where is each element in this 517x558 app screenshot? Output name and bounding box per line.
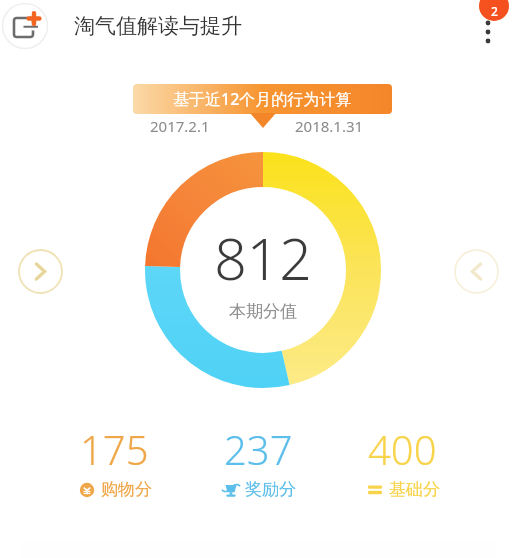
staticText: 400: [368, 422, 437, 476]
staticText: 基础分: [389, 479, 440, 500]
button[interactable]: 237: [211, 420, 306, 502]
staticText: 基于近12个月的行为计算: [173, 88, 352, 110]
staticText: 812: [214, 219, 312, 297]
staticText: 2018.1.31: [295, 116, 364, 136]
button[interactable]: New window: [1, 2, 49, 50]
button[interactable]: More options: [465, 3, 511, 49]
staticText: 本期分值: [229, 301, 297, 322]
button[interactable]: 400: [355, 420, 450, 502]
button[interactable]: Previous period: [17, 248, 64, 295]
staticText: 237: [224, 422, 293, 476]
staticText: 2: [491, 3, 498, 19]
staticText: 淘气值解读与提升: [74, 13, 242, 39]
staticText: 购物分: [101, 479, 152, 500]
staticText: 奖励分: [245, 479, 296, 500]
button[interactable]: 175: [67, 420, 162, 502]
button[interactable]: Next period: [453, 248, 500, 295]
staticText: 2017.2.1: [150, 116, 210, 136]
staticText: 175: [80, 422, 149, 476]
